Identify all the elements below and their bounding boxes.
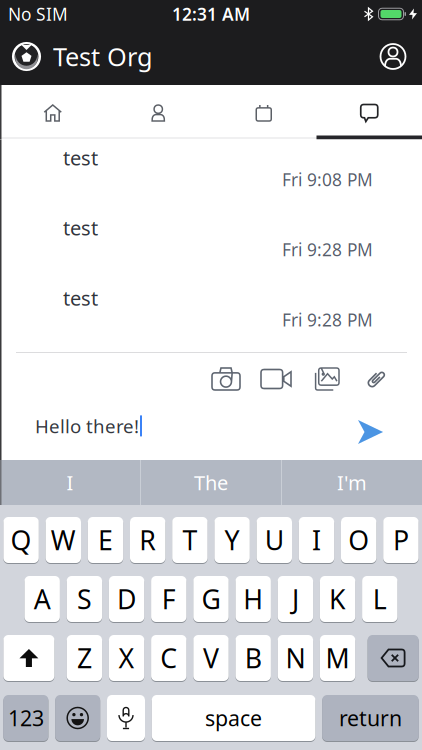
button[interactable]: Take Photo xyxy=(212,367,240,391)
staticText: The xyxy=(194,469,228,496)
button[interactable]: 123 xyxy=(3,694,48,741)
staticText: Fri 9:28 PM xyxy=(282,238,373,261)
staticText: K xyxy=(329,581,346,617)
button[interactable]: Home xyxy=(0,88,105,138)
button[interactable]: L xyxy=(362,575,397,622)
staticText: R xyxy=(139,522,156,558)
staticText: W xyxy=(51,522,76,558)
button[interactable]: K xyxy=(320,575,355,622)
staticText: 123 xyxy=(8,704,44,732)
staticText: test xyxy=(63,144,98,171)
staticText: Z xyxy=(77,640,92,676)
button[interactable]: M xyxy=(320,634,355,681)
button[interactable]: Z xyxy=(67,634,102,681)
staticText: C xyxy=(160,640,177,676)
button[interactable]: The xyxy=(141,460,281,505)
staticText: X xyxy=(119,640,135,676)
staticText: Q xyxy=(11,522,32,558)
staticText: P xyxy=(393,522,409,558)
staticText: T xyxy=(182,522,197,558)
staticText: H xyxy=(243,581,263,617)
staticText: test xyxy=(63,285,98,311)
staticText: F xyxy=(162,581,176,617)
staticText: space xyxy=(205,704,262,732)
staticText: I'm xyxy=(337,469,367,496)
button[interactable]: E xyxy=(88,516,123,563)
button[interactable]: X xyxy=(109,634,144,681)
staticText: D xyxy=(117,581,136,617)
staticText: O xyxy=(348,522,369,558)
button[interactable]: T xyxy=(172,516,208,563)
button[interactable]: G xyxy=(193,575,229,622)
button[interactable]: Attach File xyxy=(365,367,387,391)
button[interactable]: Record Video xyxy=(261,367,291,391)
button[interactable]: Delete xyxy=(368,634,419,681)
button[interactable]: Dictate xyxy=(107,694,145,741)
button[interactable]: Emoji xyxy=(55,694,100,741)
button[interactable]: Shift xyxy=(3,634,54,681)
button[interactable]: A xyxy=(24,575,60,622)
staticText: I xyxy=(312,522,321,558)
staticText: V xyxy=(203,640,219,676)
staticText: E xyxy=(98,522,113,558)
staticText: return xyxy=(339,704,402,732)
staticText: No SIM xyxy=(8,2,68,25)
staticText: Y xyxy=(225,522,240,558)
button[interactable]: W xyxy=(46,516,81,563)
button[interactable]: C xyxy=(151,634,186,681)
button[interactable]: space xyxy=(152,694,315,741)
staticText: G xyxy=(201,581,220,617)
staticText: I xyxy=(66,469,73,496)
button[interactable]: O xyxy=(341,516,376,563)
button[interactable]: J xyxy=(278,575,313,622)
staticText: Hello there! xyxy=(35,413,139,438)
button[interactable]: I xyxy=(299,516,334,563)
button[interactable]: B xyxy=(235,634,271,681)
button[interactable]: Account xyxy=(371,34,415,78)
staticText: B xyxy=(245,640,262,676)
button[interactable]: H xyxy=(235,575,271,622)
button[interactable]: Q xyxy=(3,516,39,563)
button[interactable]: F xyxy=(151,575,186,622)
button[interactable]: Chat xyxy=(316,88,422,138)
button[interactable]: U xyxy=(257,516,292,563)
button[interactable]: P xyxy=(383,516,419,563)
button[interactable]: V xyxy=(193,634,229,681)
staticText: J xyxy=(292,581,299,617)
staticText: L xyxy=(373,581,387,617)
staticText: S xyxy=(77,581,92,617)
button[interactable]: D xyxy=(109,575,144,622)
button[interactable]: I xyxy=(0,460,140,505)
button[interactable]: People xyxy=(105,88,211,138)
button[interactable]: Y xyxy=(214,516,250,563)
button[interactable]: Photo Library xyxy=(313,367,339,391)
button[interactable]: I'm xyxy=(282,460,422,505)
button[interactable]: return xyxy=(322,694,419,741)
staticText: test xyxy=(63,215,98,241)
staticText: N xyxy=(285,640,305,676)
button[interactable]: S xyxy=(67,575,102,622)
staticText: A xyxy=(34,581,51,617)
staticText: 12:31 AM xyxy=(172,2,250,25)
staticText: M xyxy=(326,640,350,676)
staticText: Fri 9:08 PM xyxy=(282,168,373,191)
button[interactable]: Send xyxy=(358,420,383,444)
staticText: Fri 9:28 PM xyxy=(282,308,373,331)
staticText: Test Org xyxy=(53,40,153,73)
button[interactable]: Calendar xyxy=(211,88,316,138)
staticText: U xyxy=(265,522,284,558)
button[interactable]: R xyxy=(130,516,165,563)
button[interactable]: N xyxy=(278,634,313,681)
